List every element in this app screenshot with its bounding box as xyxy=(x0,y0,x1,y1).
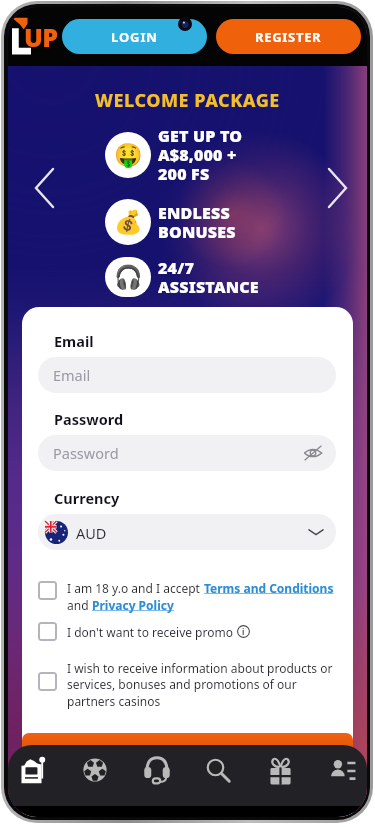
staticText: Password xyxy=(53,443,119,463)
staticText: and xyxy=(67,597,92,613)
staticText: I am 18 y.o and I accept xyxy=(67,580,204,596)
button[interactable]: I don't want to receive promo xyxy=(38,622,336,641)
staticText: Privacy Policy xyxy=(92,597,174,613)
button[interactable]: Next xyxy=(321,164,353,212)
staticText: GET UP TO A$8,000 + 200 FS xyxy=(158,125,243,185)
button[interactable]: Casino xyxy=(11,745,55,795)
staticText: 🤑 xyxy=(114,142,143,169)
button[interactable]: Show password xyxy=(303,443,323,463)
staticText: Currency xyxy=(54,488,120,508)
staticText: i xyxy=(242,626,245,637)
staticText: REGISTER xyxy=(255,28,322,46)
button[interactable]: REGISTER xyxy=(216,19,361,54)
button[interactable] xyxy=(22,733,353,777)
button[interactable]: Previous xyxy=(28,164,60,212)
staticText: LOGIN xyxy=(111,28,158,46)
button[interactable]: Email xyxy=(38,357,336,393)
staticText: Email xyxy=(53,365,91,385)
button[interactable]: Bonuses xyxy=(258,745,302,795)
staticText: WELCOME PACKAGE xyxy=(95,88,280,113)
button[interactable]: AUD xyxy=(38,514,336,550)
staticText: AUD xyxy=(76,523,107,543)
button[interactable]: Profile xyxy=(320,745,364,795)
staticText: Terms and Conditions xyxy=(204,580,334,596)
staticText: Email xyxy=(54,331,94,351)
button[interactable]: I am 18 y.o and I accept xyxy=(38,580,336,613)
button[interactable]: LOGIN xyxy=(62,19,207,54)
button[interactable]: Password xyxy=(38,435,336,471)
button[interactable]: Support xyxy=(135,745,179,795)
staticText: UP xyxy=(24,20,58,54)
staticText: Password xyxy=(54,409,124,429)
button[interactable]: Sports xyxy=(73,745,117,795)
staticText: I don't want to receive promo xyxy=(67,624,237,640)
button[interactable]: Search xyxy=(196,745,240,795)
staticText: ENDLESS BONUSES xyxy=(158,202,236,243)
staticText: 💰 xyxy=(114,209,143,236)
button[interactable]: I wish to receive information about prod… xyxy=(38,660,336,710)
staticText: I wish to receive information about prod… xyxy=(67,660,336,710)
staticText: 🎧 xyxy=(114,264,143,291)
staticText: 24/7 ASSISTANCE xyxy=(158,257,259,297)
